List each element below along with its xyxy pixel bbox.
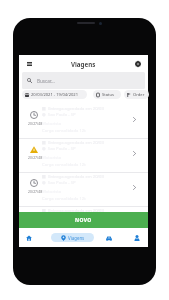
staticText: ● Sao Paulo - SP [42,214,76,220]
staticText: Motorista [42,223,62,229]
staticText: Order [133,92,145,98]
staticText: ● Sao Paulo - SP [42,146,76,152]
staticText: Viagens [71,60,96,68]
staticText: 20/03/2021 - 19/04/2021 [31,92,79,98]
staticText: Buscar... [37,78,55,84]
staticText: Carga consolidada 12t [42,196,86,202]
staticText: Status [102,92,114,98]
staticText: ● Sao Paulo - SP [42,112,76,118]
staticText: ■ Entrega agendada em 20/03 [42,174,104,180]
button[interactable]: Order [124,90,149,99]
staticText: NOVO [75,217,92,224]
staticText: ■ Entrega agendada em 20/03 [42,140,104,146]
button[interactable]: Menu [22,57,36,71]
staticText: ■ Entrega agendada em 20/03 [42,208,104,214]
button[interactable]: 20/27/48 [19,173,148,207]
button[interactable]: Status [93,90,121,99]
button[interactable]: 20/27/48 [19,105,148,139]
staticText: 20/27/48 [28,121,43,126]
staticText: Motorista [42,121,62,127]
button[interactable]: 20/27/48 [19,139,148,173]
button[interactable]: 20/03/2021 - 19/04/2021 [22,90,87,99]
button[interactable]: Home [20,229,38,247]
button[interactable]: Buscar... [22,72,145,89]
button[interactable]: Viagens [51,233,94,242]
staticText: Motorista [42,155,62,161]
button[interactable]: 20/27/48 [19,207,148,241]
staticText: Carga consolidada 12t [42,128,86,134]
staticText: Carga consolidada 12t [42,230,86,236]
button[interactable]: NOVO [19,212,148,229]
staticText: 20/27/48 [28,155,43,160]
button[interactable]: Profile [128,229,146,247]
staticText: Carga consolidada 12t [42,162,86,168]
button[interactable]: Settings [131,57,145,71]
staticText: ■ Entrega agendada em 20/03 [42,106,104,112]
staticText: Motorista [42,189,62,195]
staticText: 20/27/48 [28,189,43,194]
staticText: Viagens [68,235,85,241]
staticText: ● Sao Paulo - SP [42,180,76,186]
button[interactable]: Vehicles [100,229,118,247]
